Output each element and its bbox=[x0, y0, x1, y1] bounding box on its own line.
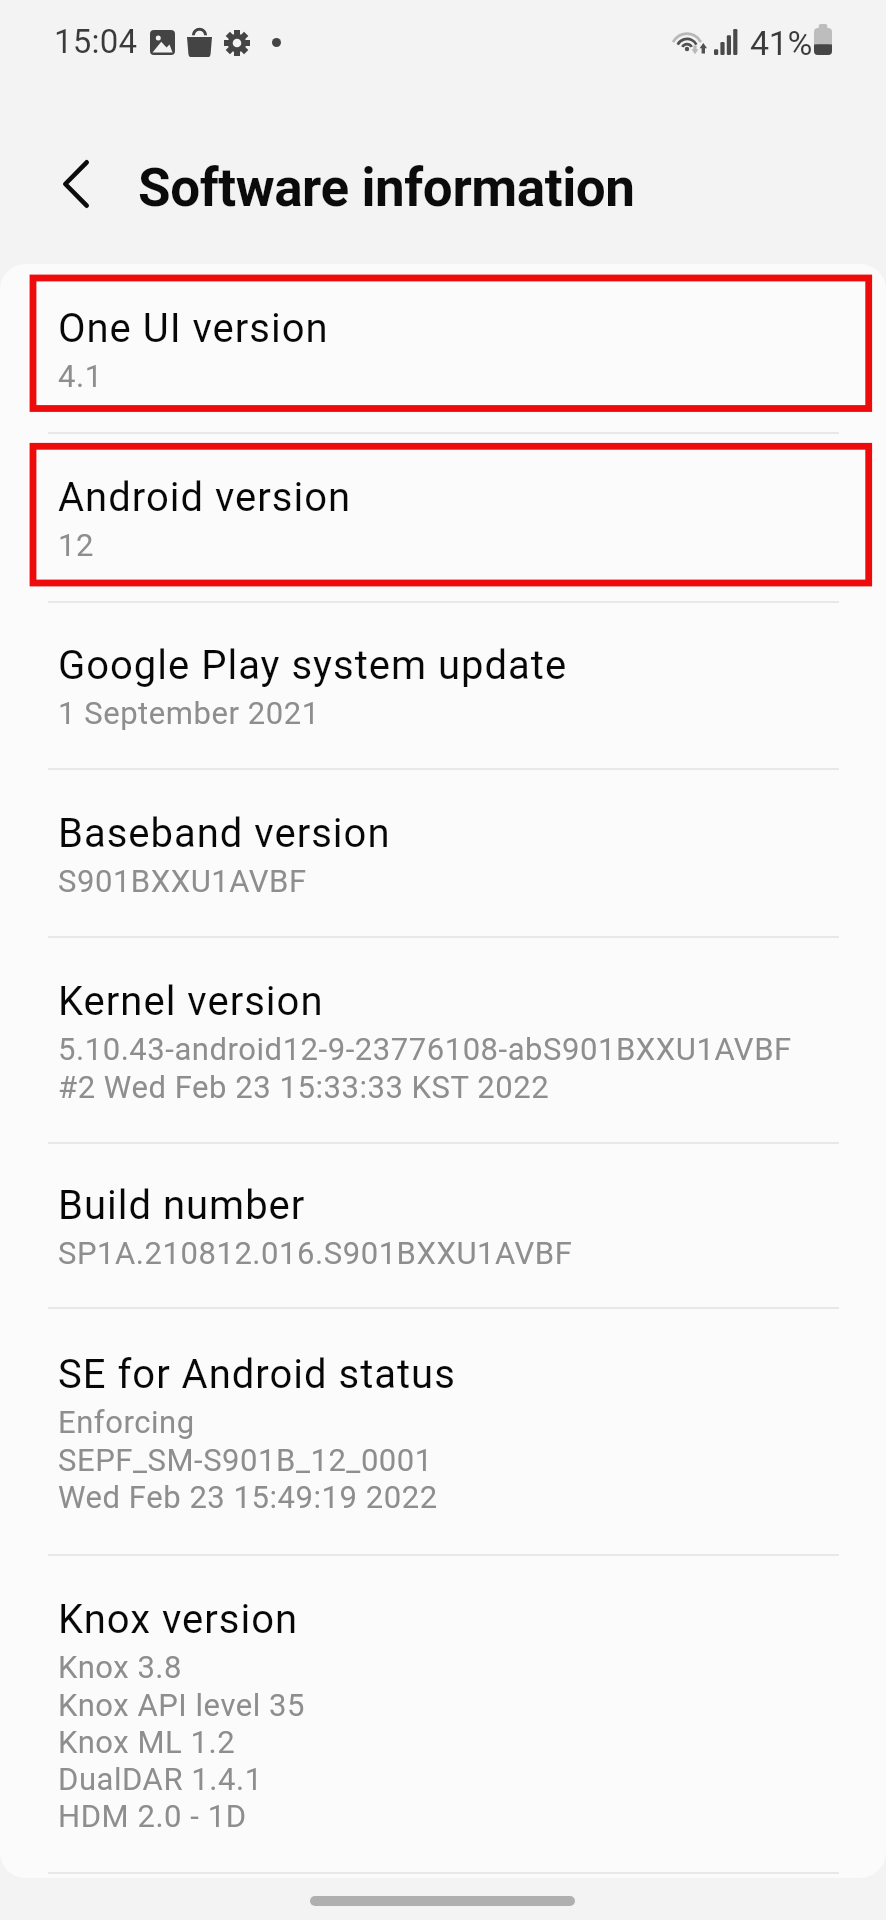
button[interactable]: SE for Android status bbox=[0, 1309, 886, 1554]
staticText: 4.1 bbox=[58, 358, 103, 394]
staticText: Build number bbox=[58, 1182, 306, 1229]
staticText: Google Play system update bbox=[58, 642, 568, 689]
button[interactable]: Android version bbox=[0, 434, 886, 601]
staticText: 1 September 2021 bbox=[58, 695, 320, 731]
staticText: Knox version bbox=[58, 1596, 299, 1643]
button[interactable]: Back bbox=[34, 142, 118, 226]
staticText: 12 bbox=[58, 527, 94, 563]
staticText: SE for Android status bbox=[58, 1351, 456, 1398]
staticText: 41% bbox=[750, 23, 813, 63]
staticText: Baseband version bbox=[58, 810, 391, 857]
staticText: Kernel version bbox=[58, 978, 324, 1025]
staticText: One UI version bbox=[58, 305, 329, 352]
staticText: 5.10.43-android12-9-23776108-abS901BXXU1… bbox=[58, 1031, 792, 1105]
button[interactable]: Kernel version bbox=[0, 938, 886, 1142]
button[interactable]: One UI version bbox=[0, 264, 886, 432]
button[interactable]: Knox version bbox=[0, 1556, 886, 1872]
button[interactable]: Baseband version bbox=[0, 770, 886, 936]
staticText: 15:04 bbox=[54, 22, 138, 61]
staticText: Android version bbox=[58, 474, 352, 521]
staticText: Knox 3.8 Knox API level 35 Knox ML 1.2 D… bbox=[58, 1649, 306, 1834]
button[interactable]: Google Play system update bbox=[0, 603, 886, 768]
staticText: S901BXXU1AVBF bbox=[58, 863, 307, 899]
button[interactable]: Build number bbox=[0, 1144, 886, 1307]
staticText: Enforcing SEPF_SM-S901B_12_0001 Wed Feb … bbox=[58, 1404, 438, 1515]
staticText: SP1A.210812.016.S901BXXU1AVBF bbox=[58, 1235, 573, 1271]
staticText: Software information bbox=[138, 157, 635, 219]
